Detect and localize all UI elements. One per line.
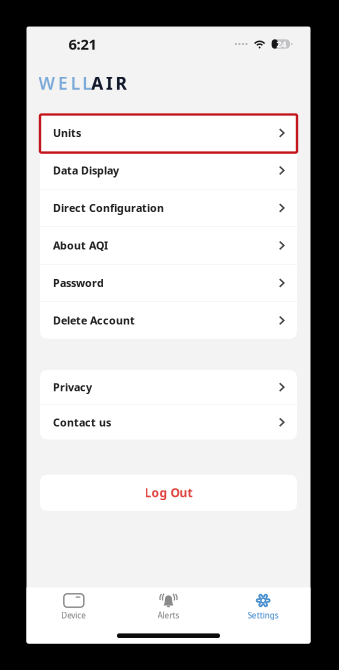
staticText: Privacy <box>53 380 92 394</box>
button[interactable]: Contact us <box>40 405 297 439</box>
staticText: Units <box>53 126 81 140</box>
staticText: Settings <box>248 610 279 621</box>
button[interactable]: Log Out <box>40 474 297 511</box>
button[interactable]: Alerts <box>121 587 216 627</box>
staticText: Contact us <box>53 415 111 429</box>
staticText: Password <box>53 276 104 290</box>
button[interactable]: Privacy <box>40 370 297 404</box>
button[interactable]: Data Display <box>40 152 297 189</box>
staticText: Direct Configuration <box>53 201 164 215</box>
staticText: Delete Account <box>53 313 135 328</box>
staticText: About AQI <box>53 238 108 253</box>
button[interactable]: Direct Configuration <box>40 189 297 226</box>
button[interactable]: Delete Account <box>40 302 297 339</box>
button[interactable]: Device <box>26 587 121 627</box>
button[interactable]: Units <box>40 114 297 151</box>
button[interactable]: Password <box>40 264 297 301</box>
staticText: Data Display <box>53 163 119 178</box>
staticText: 6:21 <box>68 34 96 54</box>
staticText: AIR <box>91 71 126 94</box>
staticText: Device <box>61 610 86 621</box>
staticText: Alerts <box>157 610 179 621</box>
staticText: 24 <box>276 38 286 50</box>
button[interactable]: Settings <box>216 587 310 627</box>
button[interactable]: About AQI <box>40 227 297 264</box>
staticText: WELL <box>38 71 91 94</box>
staticText: Log Out <box>144 485 192 501</box>
